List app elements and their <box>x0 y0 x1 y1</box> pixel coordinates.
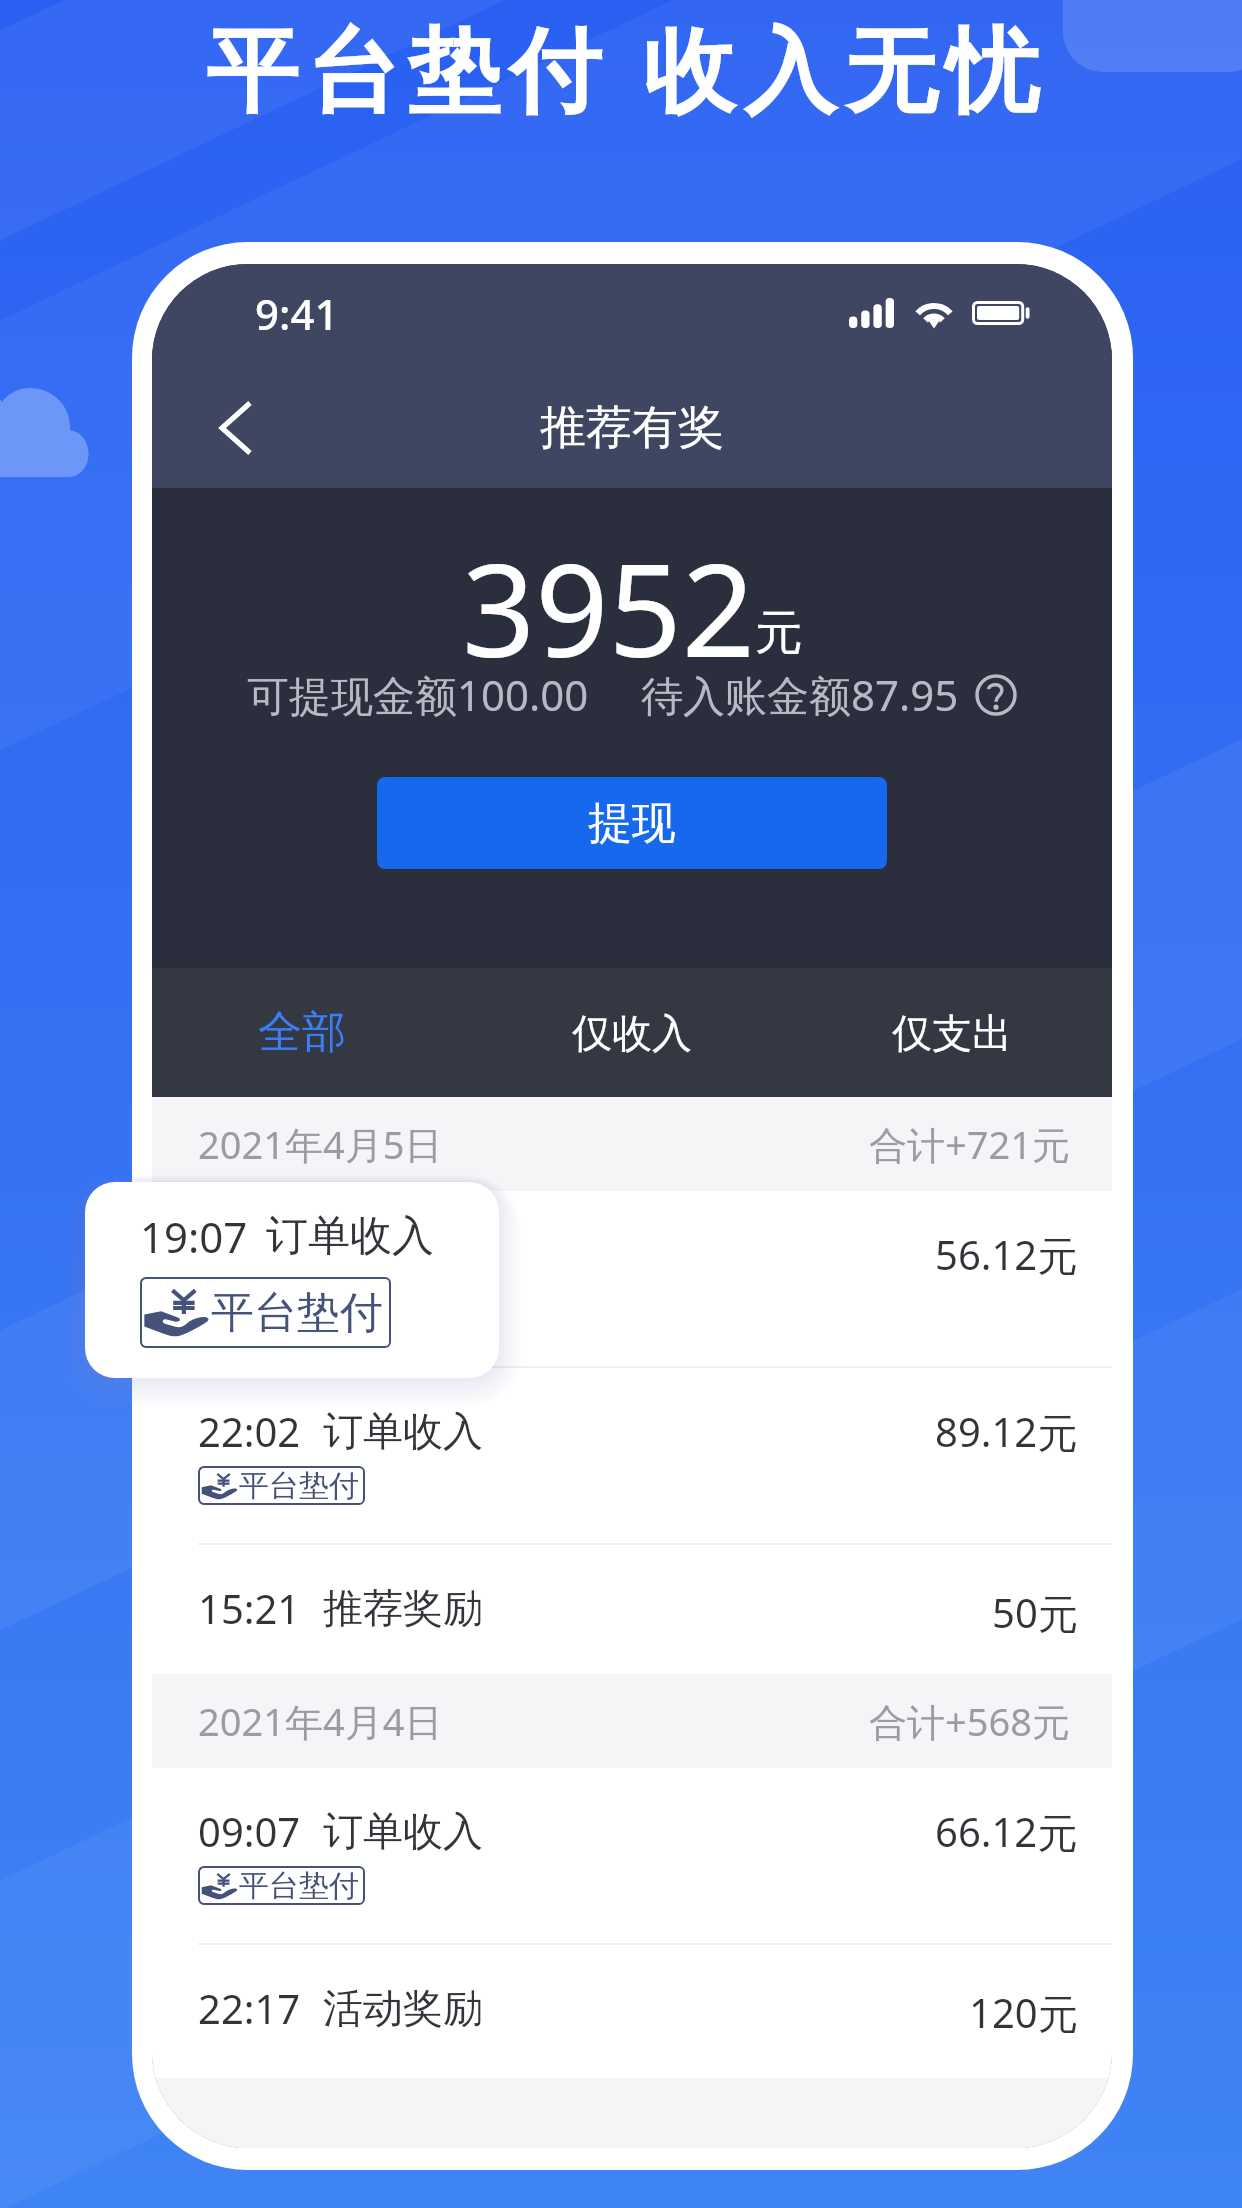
staticText: 22:17 <box>198 1981 301 2035</box>
staticText: 平台垫付 <box>211 1286 383 1340</box>
staticText: 50元 <box>992 1585 1078 1640</box>
button[interactable]: 19:07 <box>152 1191 1112 1366</box>
staticText: 合计+721元 <box>869 1118 1070 1170</box>
staticText: 待入账金额87.95 <box>641 666 959 723</box>
button[interactable]: 仅收入 <box>472 968 792 1097</box>
button[interactable]: 22:17 <box>152 1945 1112 2078</box>
staticText: 订单收入 <box>323 1806 483 1856</box>
button[interactable]: 15:21 <box>152 1545 1112 1674</box>
staticText: 平台垫付 <box>239 1867 359 1905</box>
staticText: 89.12元 <box>935 1404 1078 1459</box>
staticText: 120元 <box>969 1985 1078 2040</box>
button[interactable]: 全部 <box>152 968 472 1097</box>
staticText: 推荐有奖 <box>540 399 724 457</box>
staticText: 66.12元 <box>935 1804 1078 1859</box>
staticText: 19:07 <box>198 1227 301 1281</box>
staticText: 元 <box>755 603 803 663</box>
staticText: 可提现金额100.00 <box>247 666 589 723</box>
staticText: 仅收入 <box>572 1008 692 1058</box>
staticText: 9:41 <box>255 285 339 342</box>
staticText: 提现 <box>588 796 676 851</box>
staticText: 合计+568元 <box>869 1695 1070 1747</box>
staticText: 订单收入 <box>266 1210 434 1263</box>
staticText: 09:07 <box>198 1804 301 1858</box>
staticText: 56.12元 <box>935 1227 1078 1282</box>
staticText: 平台垫付 <box>239 1290 359 1328</box>
staticText: 2021年4月4日 <box>198 1695 443 1747</box>
button[interactable]: 22:02 <box>152 1368 1112 1543</box>
button[interactable]: 09:07 <box>152 1768 1112 1943</box>
staticText: 仅支出 <box>892 1008 1012 1058</box>
staticText: 15:21 <box>198 1581 301 1635</box>
staticText: 2021年4月5日 <box>198 1118 443 1170</box>
staticText: 全部 <box>258 1005 346 1060</box>
staticText: 平台垫付 <box>239 1467 359 1505</box>
staticText: 订单收入 <box>323 1406 483 1456</box>
staticText: 3952 <box>462 520 755 694</box>
button[interactable]: 仅支出 <box>792 968 1112 1097</box>
staticText: 活动奖励 <box>323 1983 483 2033</box>
button[interactable]: 提现 <box>377 777 887 869</box>
staticText: 平台垫付 收入无忧 <box>206 5 1047 131</box>
staticText: 19:07 <box>140 1208 248 1265</box>
staticText: 22:02 <box>198 1404 301 1458</box>
staticText: 订单收入 <box>323 1229 483 1279</box>
button[interactable]: Back <box>194 386 278 470</box>
staticText: 推荐奖励 <box>323 1583 483 1633</box>
